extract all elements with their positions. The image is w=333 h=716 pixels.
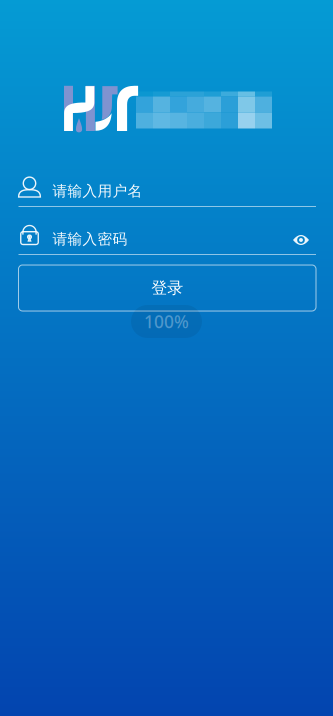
button[interactable]: 登录: [18, 265, 316, 311]
button[interactable]: 显示密码: [286, 226, 316, 254]
staticText: 登录: [151, 278, 183, 298]
staticText: 100%: [144, 310, 189, 333]
staticText: 请输入用户名: [52, 182, 142, 200]
staticText: 请输入密码: [52, 230, 127, 248]
